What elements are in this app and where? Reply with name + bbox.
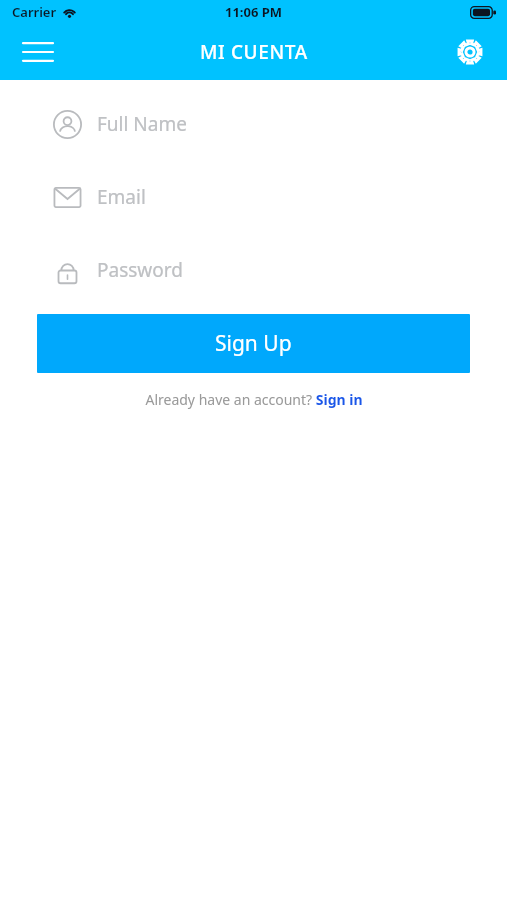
- button[interactable]: Settings: [447, 29, 493, 75]
- staticText: Email: [97, 184, 146, 210]
- button[interactable]: Email: [0, 176, 507, 218]
- staticText: Full Name: [97, 111, 187, 137]
- button[interactable]: Sign Up: [37, 314, 470, 373]
- staticText: Carrier: [12, 3, 57, 21]
- button[interactable]: Already have an account? Sign in: [137, 388, 371, 411]
- staticText: MI CUENTA: [200, 39, 308, 65]
- button[interactable]: Menu: [14, 28, 62, 76]
- button[interactable]: Password: [0, 249, 507, 291]
- staticText: 11:06 PM: [225, 3, 283, 21]
- button[interactable]: Full Name: [0, 103, 507, 145]
- staticText: Sign Up: [215, 329, 292, 358]
- staticText: Password: [97, 257, 183, 283]
